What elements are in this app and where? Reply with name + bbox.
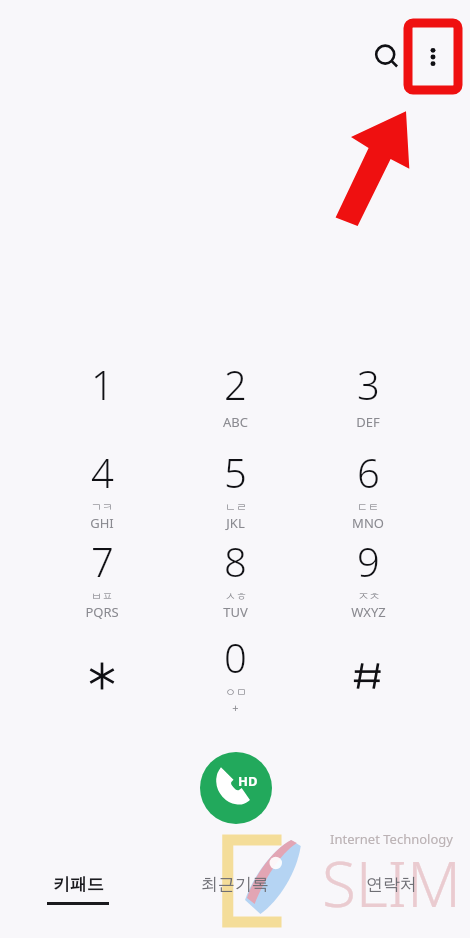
- staticText: 5: [224, 445, 247, 499]
- staticText: 3: [357, 357, 380, 411]
- button[interactable]: 0: [177, 630, 293, 730]
- staticText: 1: [91, 357, 114, 411]
- staticText: ㅂㅍ: [91, 589, 113, 603]
- button[interactable]: 5: [177, 445, 293, 533]
- staticText: SLIM: [322, 841, 462, 925]
- button[interactable]: 7: [44, 534, 160, 622]
- staticText: TUV: [223, 603, 248, 621]
- staticText: 8: [224, 534, 247, 588]
- staticText: 키패드: [53, 874, 104, 895]
- staticText: PQRS: [85, 603, 119, 621]
- button[interactable]: 9: [310, 534, 426, 622]
- staticText: ABC: [223, 413, 248, 431]
- staticText: 최근기록: [201, 874, 269, 895]
- button[interactable]: 3: [310, 357, 426, 445]
- button[interactable]: 6: [310, 445, 426, 533]
- staticText: GHI: [90, 514, 114, 532]
- staticText: DEF: [356, 413, 380, 431]
- button[interactable]: Call: [200, 752, 272, 824]
- staticText: 2: [224, 357, 247, 411]
- button[interactable]: 1: [44, 357, 160, 445]
- button[interactable]: More options: [408, 23, 458, 90]
- staticText: 7: [91, 534, 114, 588]
- button[interactable]: 4: [44, 445, 160, 533]
- button[interactable]: Search: [363, 33, 411, 81]
- staticText: 4: [91, 445, 114, 499]
- staticText: ㅅㅎ: [225, 589, 247, 603]
- button[interactable]: 최근기록: [156, 850, 313, 938]
- button[interactable]: 8: [177, 534, 293, 622]
- staticText: 9: [357, 534, 380, 588]
- staticText: JKL: [226, 514, 245, 532]
- staticText: ㅇㅁ: [225, 685, 247, 699]
- staticText: ㅈㅊ: [358, 589, 380, 603]
- staticText: ㄱㅋ: [91, 500, 113, 514]
- staticText: 0: [224, 630, 247, 684]
- staticText: Internet Technology: [330, 830, 453, 848]
- button[interactable]: 키패드: [0, 850, 156, 938]
- button[interactable]: Pound: [328, 640, 408, 712]
- staticText: MNO: [352, 514, 384, 532]
- button[interactable]: 2: [177, 357, 293, 445]
- staticText: ㄴㄹ: [225, 500, 247, 514]
- staticText: HD: [238, 772, 258, 790]
- staticText: 6: [357, 445, 380, 499]
- staticText: +: [232, 700, 239, 715]
- button[interactable]: Star: [62, 640, 142, 712]
- staticText: 연락처: [366, 874, 417, 895]
- button[interactable]: 연락처: [313, 850, 470, 938]
- staticText: WXYZ: [351, 603, 386, 621]
- staticText: ㄷㅌ: [357, 500, 379, 514]
